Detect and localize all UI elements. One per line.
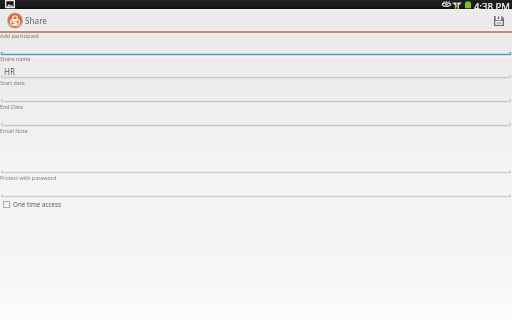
staticText: One time access <box>13 200 62 209</box>
staticText: 4:38 PM <box>474 0 511 9</box>
button[interactable]: One time access <box>0 198 512 211</box>
staticText: Add participant <box>0 32 39 39</box>
staticText: Protect with password <box>0 174 57 181</box>
button[interactable]: Save <box>494 16 504 26</box>
staticText: Email Note <box>0 127 28 134</box>
staticText: Start date <box>0 79 25 86</box>
staticText: End Date <box>0 103 23 110</box>
button[interactable]: Share <box>0 9 512 31</box>
staticText: Share name <box>0 55 31 62</box>
staticText: Share <box>25 15 47 26</box>
staticText: HR <box>4 66 15 77</box>
